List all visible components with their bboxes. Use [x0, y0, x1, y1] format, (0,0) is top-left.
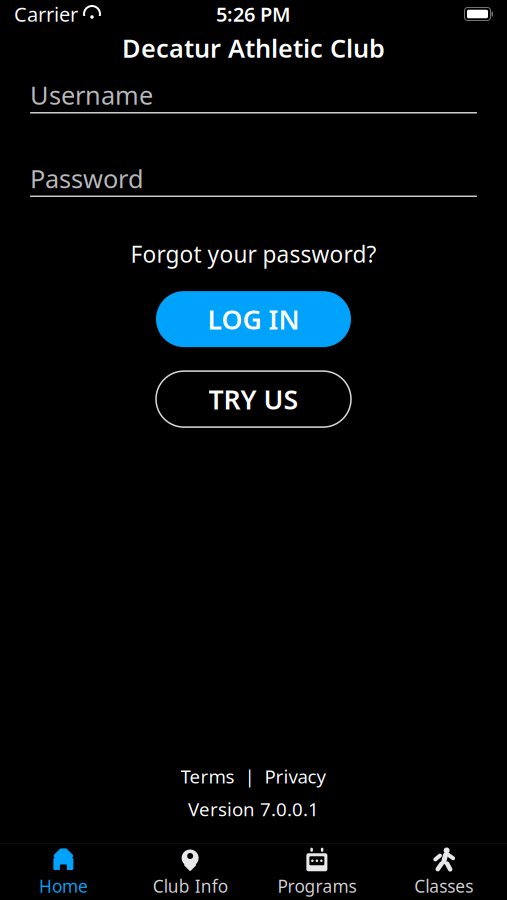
staticText: Classes [414, 874, 473, 897]
staticText: Carrier [14, 1, 78, 27]
staticText: Terms [180, 764, 234, 789]
button[interactable]: Programs [253, 840, 380, 900]
staticText: Forgot your password? [130, 239, 376, 269]
button[interactable]: LOG IN [156, 291, 351, 347]
staticText: 5:26 PM [216, 1, 291, 27]
staticText: Programs [277, 874, 356, 897]
button[interactable]: Terms [180, 764, 234, 789]
staticText: Decatur Athletic Club [122, 31, 385, 65]
staticText: | [244, 764, 254, 789]
button[interactable]: Classes [380, 840, 507, 900]
button[interactable]: TRY US [156, 371, 351, 427]
staticText: Version 7.0.0.1 [188, 797, 319, 821]
button[interactable]: Privacy [264, 764, 326, 789]
staticText: Club Info [153, 874, 228, 897]
staticText: LOG IN [207, 301, 299, 337]
staticText: Username [30, 78, 153, 112]
staticText: TRY US [208, 381, 298, 417]
staticText: Password [30, 162, 144, 195]
button[interactable]: Home [0, 840, 127, 900]
staticText: Home [39, 874, 88, 897]
button[interactable]: Forgot your password? [120, 233, 386, 275]
button[interactable]: Club Info [127, 840, 254, 900]
staticText: Privacy [264, 764, 326, 789]
